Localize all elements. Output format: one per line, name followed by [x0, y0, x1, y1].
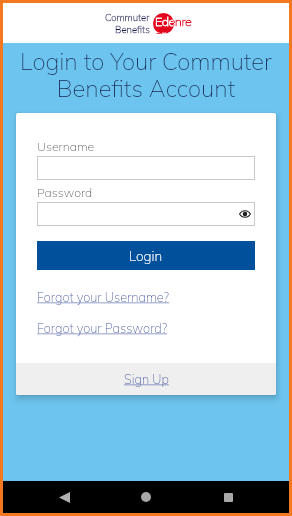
button[interactable]: Login: [37, 241, 255, 270]
staticText: Login to Your Commuter Benefits Account: [3, 46, 289, 102]
button[interactable]: [37, 156, 255, 180]
button[interactable]: Show password: [237, 206, 253, 222]
button[interactable]: Home: [130, 481, 162, 513]
staticText: Password: [37, 185, 93, 200]
staticText: Edenred: [155, 13, 195, 34]
button[interactable]: Back: [48, 481, 80, 513]
staticText: Benefits: [115, 23, 150, 35]
button[interactable]: Forgot your Password?: [37, 320, 168, 336]
staticText: Login: [129, 247, 163, 264]
button[interactable]: Sign Up: [16, 363, 276, 395]
staticText: Sign Up: [124, 371, 169, 387]
button[interactable]: Forgot your Username?: [37, 289, 170, 305]
staticText: Forgot your Password?: [37, 320, 168, 336]
button[interactable]: Recent apps: [212, 481, 244, 513]
staticText: Edenred: [155, 13, 174, 34]
staticText: Username: [37, 139, 95, 154]
staticText: Commuter: [105, 11, 150, 23]
button[interactable]: Show password: [37, 202, 255, 226]
staticText: Forgot your Username?: [37, 289, 170, 305]
